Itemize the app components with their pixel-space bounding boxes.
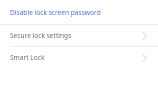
staticText: Disable lock screen password: [10, 8, 101, 17]
staticText: Smart Lock: [10, 53, 45, 62]
staticText: Secure lock settings: [10, 31, 72, 40]
button[interactable]: Secure lock settings: [0, 25, 158, 46]
button[interactable]: Disable lock screen password: [0, 0, 158, 24]
button[interactable]: Smart Lock: [0, 47, 158, 68]
